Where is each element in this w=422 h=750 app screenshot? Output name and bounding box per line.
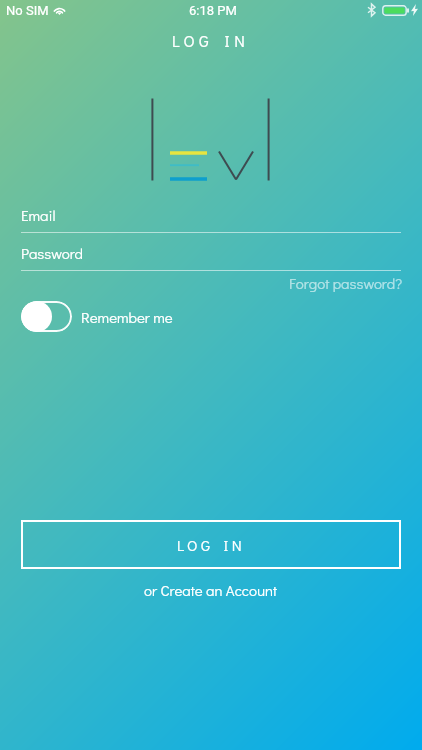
other: Charging xyxy=(411,4,418,16)
button[interactable]: LOG IN xyxy=(21,520,401,569)
button[interactable]: or Create an Account xyxy=(0,580,422,600)
staticText: 6:18 PM xyxy=(189,3,237,18)
staticText: Email xyxy=(21,205,56,225)
other: Bluetooth xyxy=(368,4,375,16)
button[interactable]: Email xyxy=(21,204,401,233)
button[interactable]: Password xyxy=(21,242,401,271)
staticText: Remember me xyxy=(81,307,173,327)
button[interactable]: Remember me xyxy=(21,301,173,332)
button[interactable]: Forgot password? xyxy=(260,272,403,294)
staticText: LOG IN xyxy=(177,535,246,555)
staticText: Password xyxy=(21,243,84,263)
staticText: LOG IN xyxy=(172,30,250,50)
staticText: Forgot password? xyxy=(289,273,403,293)
staticText: or Create an Account xyxy=(144,580,278,600)
other: Battery xyxy=(382,5,409,16)
staticText: No SIM xyxy=(6,3,49,18)
other: Wi-Fi xyxy=(53,5,66,15)
